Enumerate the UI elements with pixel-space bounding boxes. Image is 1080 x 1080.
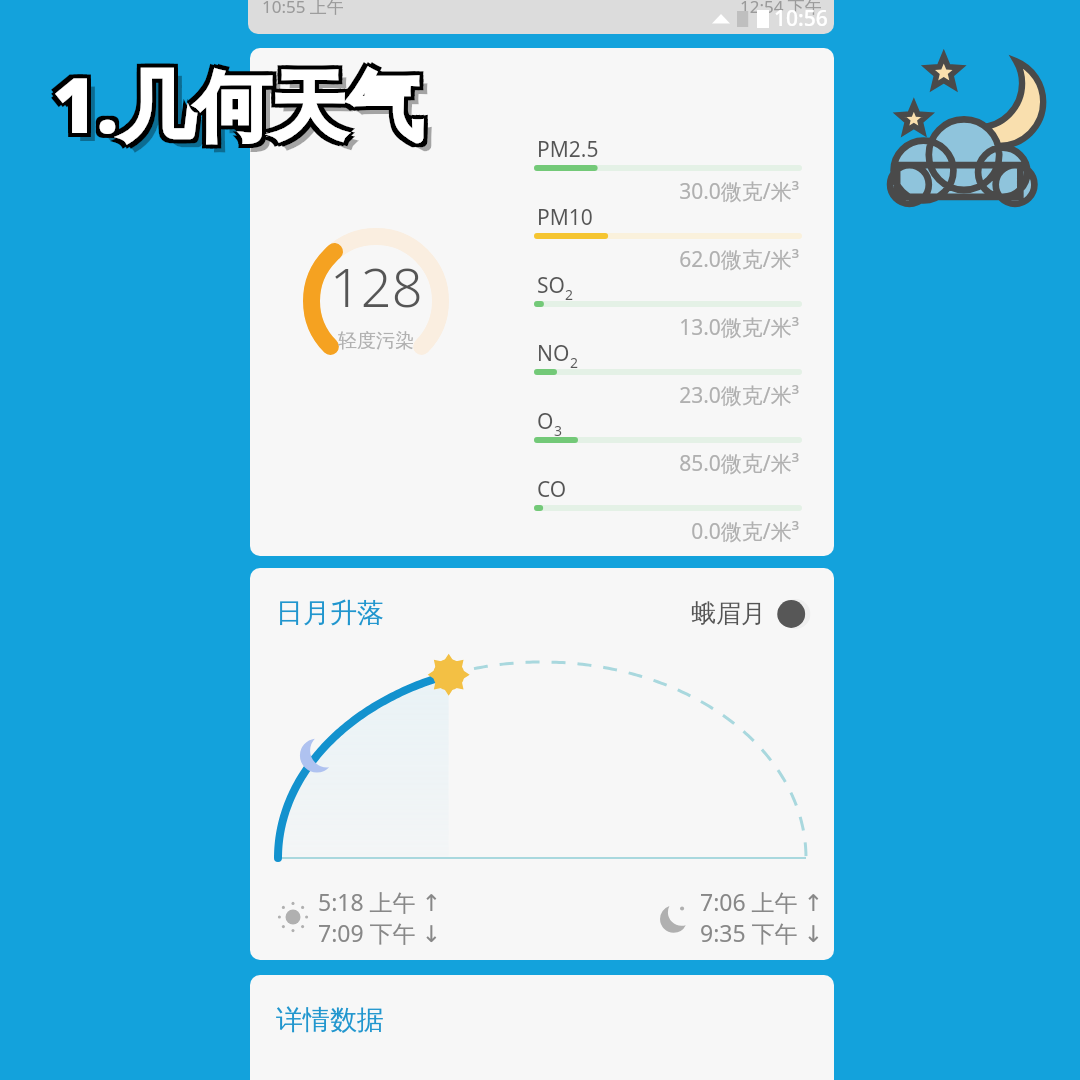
staticText: 蛾眉月 [691, 598, 766, 629]
staticText: 12:54 下午 [740, 0, 822, 18]
staticText: 1.几何天气 [52, 48, 423, 152]
button[interactable]: 日月升落 [250, 568, 834, 960]
staticText: 1.几何天气 [56, 48, 427, 152]
staticText: 13.0微克/米³ [537, 313, 799, 342]
staticText: 9:35 下午 ↓ [700, 917, 823, 948]
staticText: 7:06 上午 ↑ [700, 886, 823, 917]
staticText: 1.几何天气 [48, 56, 419, 160]
staticText: 1.几何天气 [48, 52, 419, 156]
staticText: 3 [554, 421, 563, 440]
other: Moon phase [778, 599, 808, 629]
staticText: PM2.5 [537, 135, 599, 164]
staticText: 2 [570, 353, 579, 372]
staticText: 轻度污染 [338, 329, 414, 353]
staticText: PM10 [537, 203, 593, 232]
staticText: 1.几何天气 [56, 56, 427, 160]
other: Night cloud weather [876, 42, 1052, 218]
staticText: 7:09 下午 ↓ [318, 917, 441, 948]
staticText: 85.0微克/米³ [537, 449, 799, 478]
staticText: 日月升落 [276, 596, 384, 630]
staticText: 2 [565, 285, 574, 304]
staticText: NO [537, 339, 570, 368]
staticText: O [537, 407, 554, 436]
staticText: 1.几何天气 [52, 56, 423, 160]
staticText: 62.0微克/米³ [537, 245, 799, 274]
staticText: CO [537, 475, 567, 504]
staticText: 0.0微克/米³ [537, 517, 799, 546]
staticText: 5:18 上午 ↑ [318, 886, 441, 917]
staticText: 1.几何天气 [48, 48, 419, 152]
staticText: 128 [330, 249, 423, 323]
staticText: 详情数据 [276, 1003, 384, 1037]
staticText: 1.几何天气 [60, 60, 431, 164]
staticText: 30.0微克/米³ [537, 177, 799, 206]
button[interactable]: 128 [250, 48, 834, 556]
staticText: SO [537, 271, 565, 300]
staticText: 23.0微克/米³ [537, 381, 799, 410]
staticText: 10:55 上午 [262, 0, 344, 18]
staticText: 1.几何天气 [52, 52, 423, 156]
button[interactable]: 详情数据 [250, 975, 834, 1080]
staticText: 10:56 [774, 4, 828, 33]
staticText: 1.几何天气 [56, 52, 427, 156]
